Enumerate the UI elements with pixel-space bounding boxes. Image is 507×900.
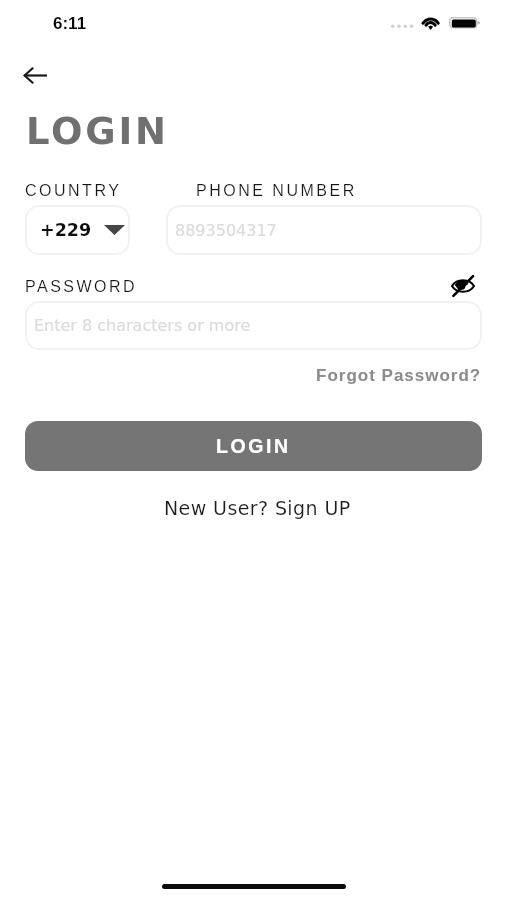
button[interactable]: New User? Sign UP bbox=[152, 492, 363, 524]
button[interactable]: +229 bbox=[25, 205, 130, 255]
staticText: PHONE NUMBER bbox=[196, 182, 357, 200]
button[interactable]: Enter 8 characters or more bbox=[25, 301, 482, 350]
staticText: 6:11 bbox=[53, 14, 87, 33]
staticText: LOGIN bbox=[216, 435, 291, 457]
staticText: 8893504317 bbox=[175, 221, 277, 240]
staticText: PASSWORD bbox=[25, 278, 138, 296]
staticText: New User? Sign UP bbox=[164, 497, 351, 519]
button[interactable]: 8893504317 bbox=[166, 205, 482, 255]
button[interactable]: Show password bbox=[446, 269, 480, 303]
staticText: Forgot Password? bbox=[316, 366, 482, 385]
staticText: COUNTRY bbox=[25, 182, 122, 200]
staticText: LOGIN bbox=[26, 110, 169, 153]
button[interactable]: LOGIN bbox=[25, 421, 482, 471]
button[interactable]: Back bbox=[14, 54, 56, 96]
staticText: Enter 8 characters or more bbox=[34, 316, 251, 335]
staticText: +229 bbox=[40, 220, 92, 240]
button[interactable]: Forgot Password? bbox=[300, 358, 492, 393]
